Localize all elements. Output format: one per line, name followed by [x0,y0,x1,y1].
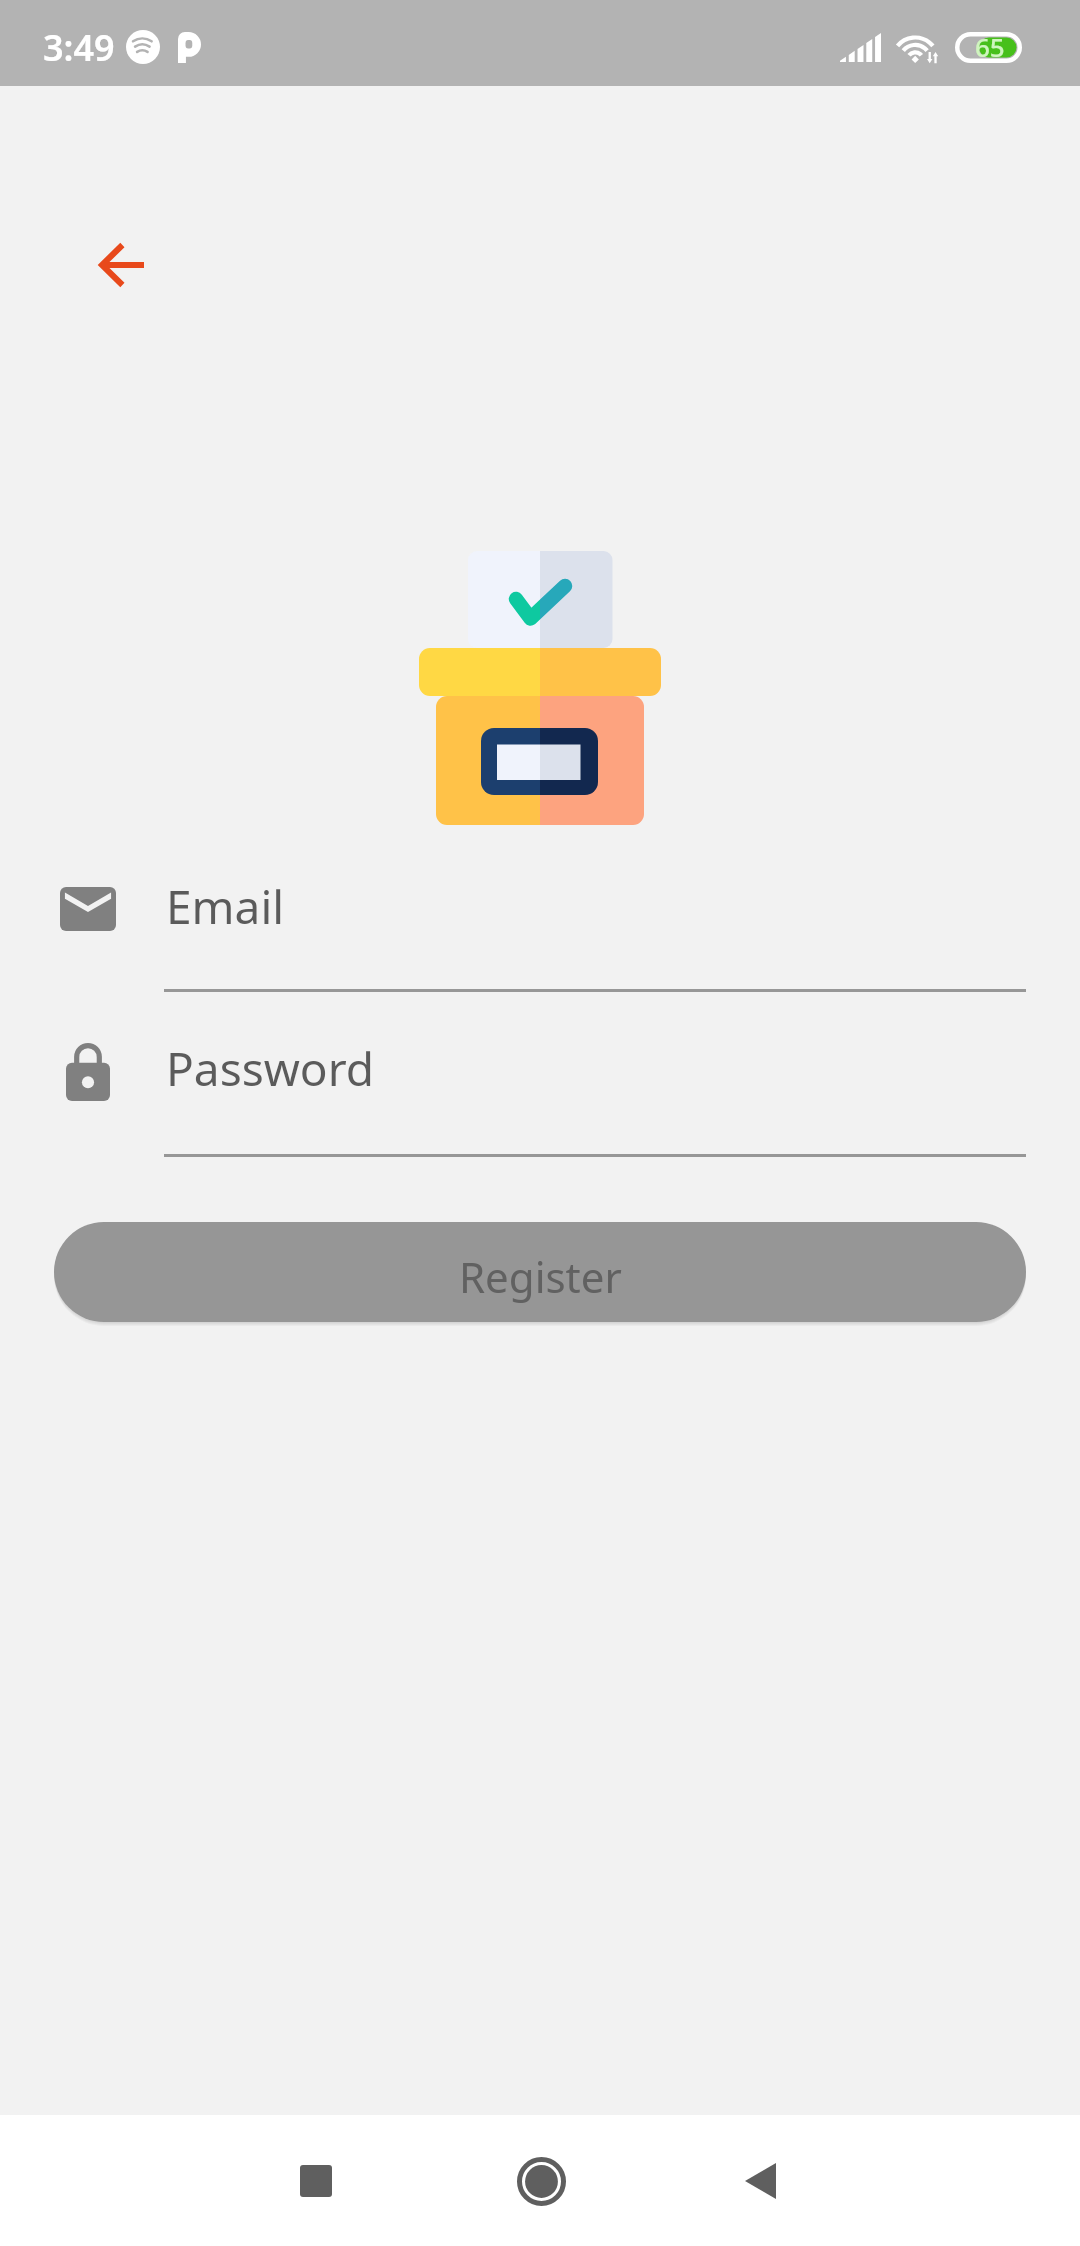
staticText: 3:49 [43,23,115,72]
button[interactable]: Home [497,2137,585,2225]
staticText: Password [166,1037,375,1100]
button[interactable]: Password [40,1022,1030,1122]
button[interactable]: Register [54,1222,1026,1322]
button[interactable]: Email [40,860,1030,960]
staticText: Register [459,1248,622,1305]
staticText: Email [166,875,285,938]
button[interactable]: Recent apps [272,2137,360,2225]
button[interactable]: Back [77,221,165,309]
staticText: 65 [975,29,1005,60]
button[interactable]: Back [716,2137,804,2225]
